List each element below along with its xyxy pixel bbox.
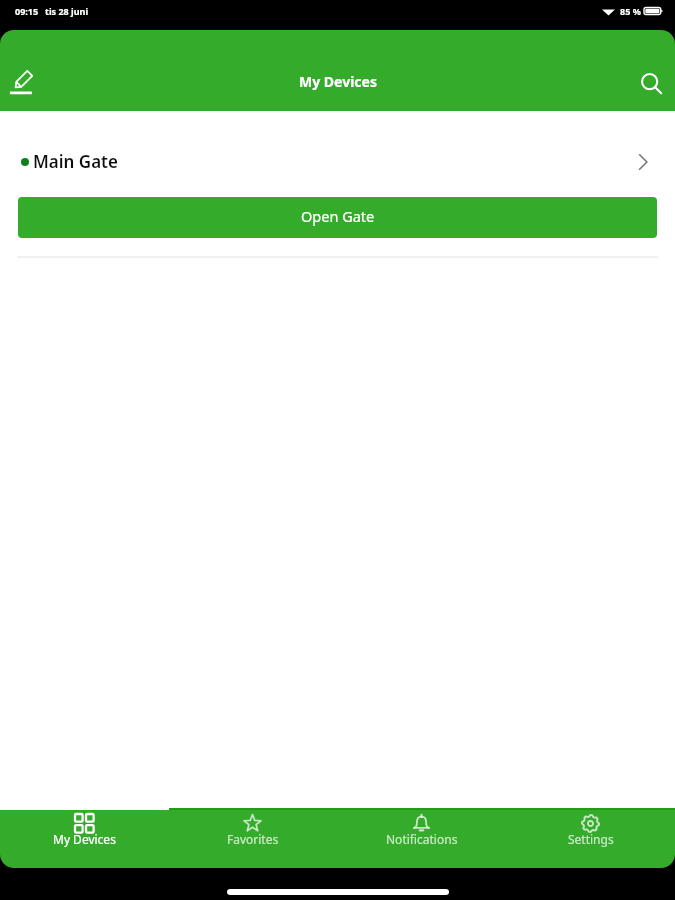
staticText: My Devices bbox=[299, 72, 377, 91]
button[interactable]: Edit bbox=[2, 63, 42, 103]
button[interactable]: Notifications bbox=[337, 808, 506, 868]
staticText: Open Gate bbox=[301, 206, 375, 226]
button[interactable]: Main Gate bbox=[0, 111, 675, 197]
staticText: My Devices bbox=[53, 831, 116, 847]
staticText: 09:15 bbox=[15, 5, 39, 17]
staticText: Favorites bbox=[227, 831, 279, 847]
button[interactable]: Favorites bbox=[168, 808, 337, 868]
button[interactable]: My Devices bbox=[0, 808, 168, 868]
button[interactable]: Search bbox=[631, 63, 671, 103]
staticText: Settings bbox=[568, 831, 614, 847]
button[interactable]: Open Gate bbox=[18, 197, 657, 238]
staticText: Notifications bbox=[386, 831, 458, 847]
button[interactable]: Settings bbox=[506, 808, 675, 868]
staticText: tis 28 juni bbox=[45, 5, 89, 17]
staticText: Main Gate bbox=[33, 150, 118, 173]
staticText: 85 % bbox=[620, 5, 641, 17]
